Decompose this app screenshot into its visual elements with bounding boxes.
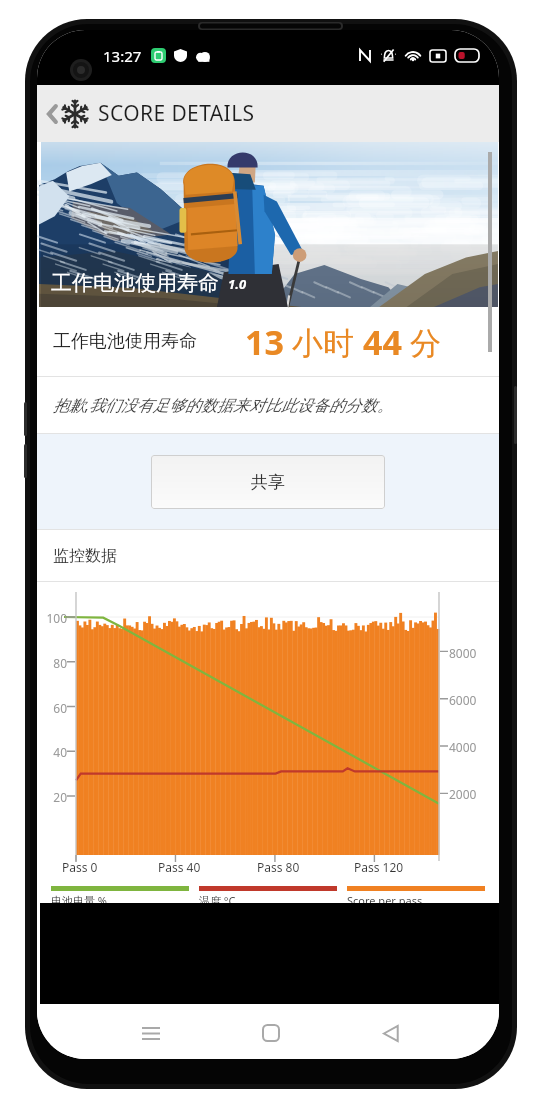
- staticText: 共享: [251, 472, 285, 493]
- staticText: 13:27: [103, 46, 142, 66]
- staticText: 2000: [449, 786, 477, 802]
- staticText: 电池电量 %: [51, 893, 108, 907]
- staticText: Pass 120: [354, 859, 404, 875]
- staticText: Pass 80: [257, 859, 300, 875]
- button[interactable]: SCORE DETAILS: [37, 85, 499, 142]
- button[interactable]: 共享: [151, 455, 385, 509]
- staticText: 80: [39, 655, 67, 671]
- staticText: 40: [39, 744, 67, 760]
- staticText: 小时: [284, 321, 363, 363]
- staticText: Pass 0: [62, 859, 98, 875]
- staticText: 4000: [449, 739, 477, 755]
- staticText: 监控数据: [53, 546, 117, 566]
- staticText: Pass 40: [158, 859, 201, 875]
- button[interactable]: Recent apps: [125, 1007, 177, 1059]
- staticText: 100: [39, 610, 67, 626]
- staticText: 1.0: [228, 275, 247, 293]
- staticText: 分: [402, 321, 442, 363]
- staticText: 44: [363, 319, 402, 365]
- staticText: 20: [39, 789, 67, 805]
- staticText: SCORE DETAILS: [98, 99, 255, 128]
- staticText: 抱歉,我们没有足够的数据来对比此设备的分数。: [53, 394, 394, 416]
- staticText: 温度 °C: [199, 893, 236, 907]
- staticText: 13: [245, 319, 284, 365]
- staticText: 60: [39, 700, 67, 716]
- staticText: 工作电池使用寿命: [51, 270, 219, 296]
- staticText: Score per pass: [347, 893, 423, 907]
- staticText: 6000: [449, 692, 477, 708]
- button[interactable]: Home: [245, 1007, 297, 1059]
- button[interactable]: Back: [365, 1007, 417, 1059]
- staticText: 工作电池使用寿命: [53, 330, 197, 353]
- staticText: 8000: [449, 645, 477, 661]
